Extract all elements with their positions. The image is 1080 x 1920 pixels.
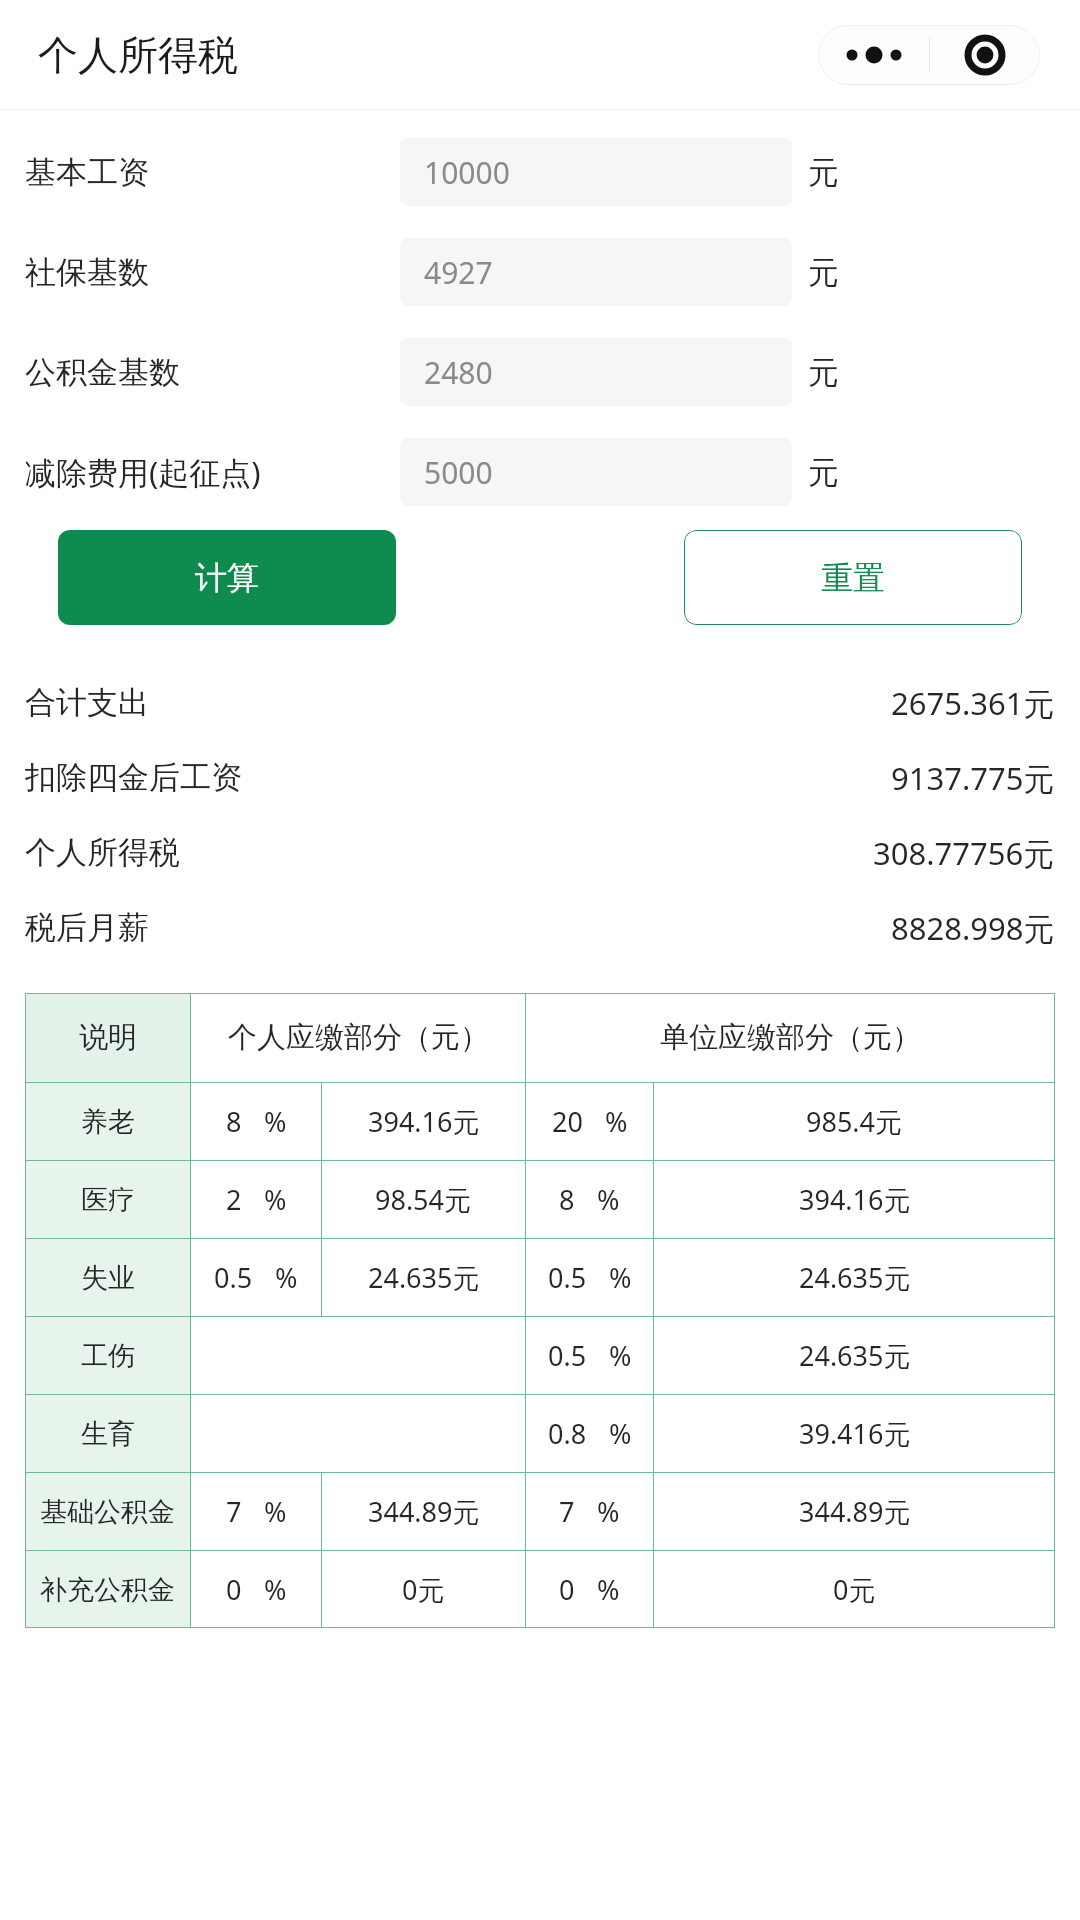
- staticText: 0.5: [214, 1259, 253, 1296]
- staticText: 394.16元: [799, 1181, 911, 1218]
- staticText: 394.16元: [368, 1103, 480, 1140]
- staticText: %: [597, 1493, 620, 1530]
- staticText: 2: [226, 1181, 242, 1218]
- staticText: 个人所得税: [25, 833, 180, 872]
- staticText: 2675.361元: [891, 682, 1055, 724]
- staticText: 元: [808, 253, 839, 292]
- staticText: 4927: [424, 252, 493, 293]
- staticText: 生育: [81, 1417, 135, 1451]
- staticText: 0: [226, 1571, 242, 1608]
- staticText: 说明: [79, 1019, 137, 1056]
- staticText: %: [609, 1337, 632, 1374]
- staticText: 养老: [81, 1105, 135, 1139]
- staticText: 2480: [424, 352, 493, 393]
- button[interactable]: 计算: [58, 530, 396, 625]
- staticText: 0.5: [548, 1259, 587, 1296]
- staticText: 重置: [821, 558, 885, 598]
- staticText: 24.635元: [799, 1337, 911, 1374]
- staticText: 单位应缴部分（元）: [660, 1019, 921, 1056]
- staticText: 5000: [424, 452, 493, 493]
- button[interactable]: 2480: [400, 338, 792, 406]
- staticText: 7: [226, 1493, 242, 1530]
- staticText: 税后月薪: [25, 908, 149, 947]
- button[interactable]: Close: [929, 25, 1040, 85]
- staticText: 个人所得税: [38, 30, 238, 80]
- staticText: 8: [559, 1181, 575, 1218]
- staticText: 308.77756元: [873, 832, 1055, 874]
- staticText: %: [609, 1259, 632, 1296]
- staticText: 0元: [833, 1571, 876, 1608]
- staticText: 8828.998元: [891, 907, 1055, 949]
- staticText: 7: [559, 1493, 575, 1530]
- staticText: 社保基数: [25, 253, 149, 292]
- staticText: 个人应缴部分（元）: [228, 1019, 489, 1056]
- button[interactable]: More: [818, 25, 929, 85]
- staticText: 元: [808, 353, 839, 392]
- staticText: 8: [226, 1103, 242, 1140]
- staticText: %: [605, 1103, 628, 1140]
- staticText: %: [275, 1259, 298, 1296]
- button[interactable]: 5000: [400, 438, 792, 506]
- staticText: 基本工资: [25, 153, 149, 192]
- staticText: 9137.775元: [891, 757, 1055, 799]
- staticText: 医疗: [81, 1183, 135, 1217]
- staticText: 补充公积金: [40, 1573, 175, 1607]
- staticText: 工伤: [81, 1339, 135, 1373]
- staticText: %: [597, 1181, 620, 1218]
- staticText: %: [264, 1103, 287, 1140]
- staticText: %: [264, 1181, 287, 1218]
- staticText: 10000: [424, 152, 510, 193]
- button[interactable]: 重置: [684, 530, 1022, 625]
- staticText: 减除费用(起征点): [25, 451, 261, 493]
- staticText: %: [597, 1571, 620, 1608]
- staticText: 24.635元: [799, 1259, 911, 1296]
- staticText: 元: [808, 153, 839, 192]
- staticText: 扣除四金后工资: [25, 758, 242, 797]
- staticText: 公积金基数: [25, 353, 180, 392]
- staticText: 元: [808, 453, 839, 492]
- staticText: 0: [559, 1571, 575, 1608]
- staticText: %: [264, 1571, 287, 1608]
- staticText: 0元: [402, 1571, 445, 1608]
- staticText: %: [264, 1493, 287, 1530]
- staticText: %: [609, 1415, 632, 1452]
- staticText: 985.4元: [806, 1103, 903, 1140]
- staticText: 基础公积金: [40, 1495, 175, 1529]
- staticText: 计算: [195, 558, 259, 598]
- staticText: 24.635元: [368, 1259, 480, 1296]
- button[interactable]: 10000: [400, 138, 792, 206]
- staticText: 合计支出: [25, 683, 149, 722]
- staticText: 98.54元: [375, 1181, 472, 1218]
- button[interactable]: 4927: [400, 238, 792, 306]
- staticText: 344.89元: [368, 1493, 480, 1530]
- staticText: 39.416元: [799, 1415, 911, 1452]
- staticText: 20: [552, 1103, 583, 1140]
- staticText: 0.5: [548, 1337, 587, 1374]
- staticText: 0.8: [548, 1415, 587, 1452]
- staticText: 失业: [81, 1261, 135, 1295]
- staticText: 344.89元: [799, 1493, 911, 1530]
